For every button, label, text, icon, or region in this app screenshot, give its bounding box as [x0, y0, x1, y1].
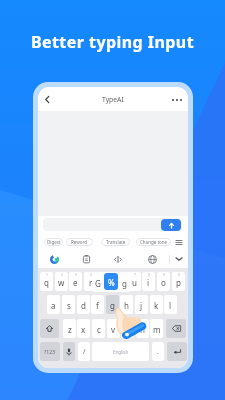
staticText: % [108, 277, 115, 288]
staticText: p [176, 277, 181, 288]
staticText: q [44, 277, 49, 288]
button[interactable]: a [47, 295, 60, 314]
button[interactable]: Text cursor [112, 253, 124, 265]
staticText: g [122, 278, 127, 289]
staticText: English [113, 349, 129, 355]
button[interactable]: 0 [172, 272, 185, 291]
button[interactable]: d [77, 295, 90, 314]
staticText: 8 [148, 273, 150, 277]
button[interactable]: g [106, 295, 119, 314]
button[interactable]: Voice input [63, 342, 75, 361]
staticText: c [97, 324, 101, 335]
staticText: f [96, 300, 99, 311]
staticText: g [110, 300, 115, 311]
staticText: l [169, 300, 172, 311]
staticText: j [140, 300, 143, 311]
button[interactable]: v [107, 319, 120, 338]
staticText: 9 [163, 273, 165, 277]
button[interactable]: Shift [40, 319, 59, 338]
staticText: . [157, 347, 159, 356]
staticText: 5 [105, 273, 107, 277]
button[interactable]: Change tone [136, 238, 171, 246]
staticText: y [117, 277, 122, 288]
button[interactable]: h [120, 295, 133, 314]
button[interactable]: Reword [66, 238, 93, 246]
staticText: 4 [90, 273, 92, 277]
staticText: 7 [134, 273, 136, 277]
button[interactable]: c [92, 319, 105, 338]
button[interactable]: Back [40, 92, 55, 107]
staticText: u [132, 277, 137, 288]
staticText: m [153, 324, 161, 335]
button[interactable]: Digest [44, 238, 63, 246]
button[interactable]: Backspace [166, 319, 186, 338]
button[interactable]: x [77, 319, 90, 338]
button[interactable]: . [152, 342, 164, 361]
button[interactable] [43, 218, 182, 231]
button[interactable]: English [92, 342, 149, 361]
button[interactable]: 9 [157, 272, 170, 291]
staticText: w [58, 277, 65, 288]
button[interactable]: / [78, 342, 90, 361]
staticText: 0 [178, 273, 180, 277]
button[interactable]: 7 [128, 272, 141, 291]
staticText: v [111, 324, 116, 335]
button[interactable]: s [62, 295, 75, 314]
staticText: Translate [106, 239, 126, 245]
button[interactable]: Collapse keyboard [173, 253, 185, 265]
staticText: n [140, 324, 145, 335]
staticText: e [73, 277, 78, 288]
staticText: 1 [46, 273, 48, 277]
staticText: Change tone [140, 239, 168, 245]
button[interactable]: k [150, 295, 163, 314]
button[interactable]: Language [146, 253, 158, 265]
button[interactable]: 8 [142, 272, 155, 291]
button[interactable]: 3 [69, 272, 82, 291]
staticText: ?123 [44, 348, 56, 355]
staticText: 2 [61, 273, 63, 277]
staticText: Digest [47, 239, 61, 245]
button[interactable]: Translate [101, 238, 130, 246]
staticText: b [125, 324, 130, 335]
button[interactable]: Send [161, 219, 181, 231]
staticText: z [68, 324, 72, 335]
staticText: / [83, 347, 86, 356]
staticText: Better typing Input [0, 31, 225, 53]
button[interactable]: Alternate characters [92, 272, 131, 292]
staticText: h [124, 300, 129, 311]
button[interactable]: f [91, 295, 104, 314]
button[interactable]: 4 [84, 272, 97, 291]
button[interactable]: Assistant [48, 253, 60, 265]
staticText: o [161, 277, 166, 288]
button[interactable]: b [121, 319, 134, 338]
button[interactable]: l [164, 295, 177, 314]
staticText: r [89, 277, 93, 288]
button[interactable]: n [136, 319, 149, 338]
button[interactable]: Symbols [40, 342, 60, 361]
staticText: i [147, 277, 150, 288]
staticText: s [67, 300, 71, 311]
button[interactable]: Enter [167, 342, 187, 361]
button[interactable]: z [63, 319, 76, 338]
staticText: 3 [75, 273, 77, 277]
button[interactable]: More options [169, 92, 184, 107]
button[interactable]: 1 [40, 272, 53, 291]
staticText: G [95, 278, 101, 289]
button[interactable]: 5 [99, 272, 112, 291]
button[interactable]: Clipboard [80, 253, 92, 265]
staticText: x [81, 324, 86, 335]
button[interactable]: m [150, 319, 163, 338]
button[interactable]: 2 [55, 272, 68, 291]
staticText: Reword [71, 239, 88, 245]
button[interactable]: j [135, 295, 148, 314]
staticText: k [154, 300, 159, 311]
button[interactable]: More actions [174, 238, 183, 246]
staticText: a [51, 300, 56, 311]
button[interactable]: 6 [113, 272, 126, 291]
staticText: d [81, 300, 86, 311]
staticText: TypeAI [102, 95, 124, 104]
